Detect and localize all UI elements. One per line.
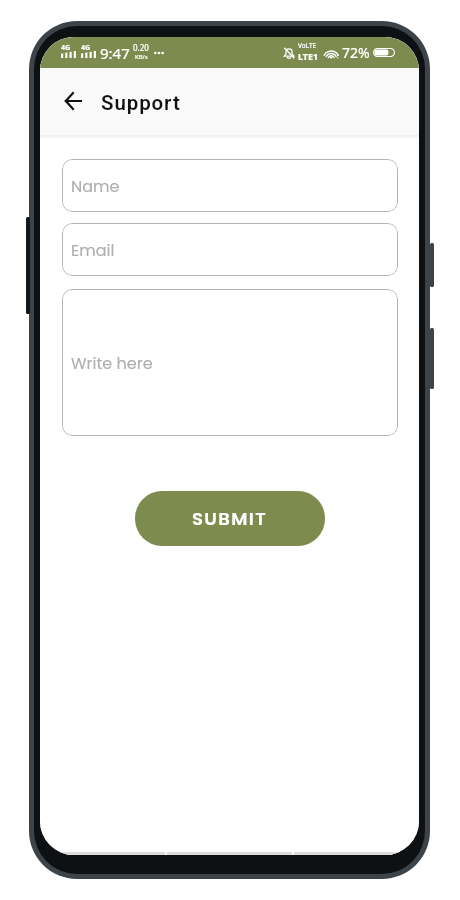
staticText: 0.20 [133, 42, 149, 53]
button[interactable]: Back [51, 79, 95, 123]
staticText: 72% [342, 43, 370, 62]
button[interactable]: SUBMIT [135, 491, 325, 546]
staticText: Name [71, 175, 120, 197]
button[interactable]: Name [62, 159, 398, 212]
staticText: VoLTE [298, 41, 317, 50]
staticText: 4G [81, 43, 91, 53]
staticText: 4G [61, 43, 71, 53]
staticText: KB/s [135, 53, 148, 61]
button[interactable]: Email [62, 223, 398, 276]
staticText: LTE1 [298, 50, 319, 62]
staticText: 9:47 [100, 43, 130, 63]
staticText: SUBMIT [192, 506, 268, 531]
staticText: Support [101, 91, 181, 115]
staticText: Write here [71, 352, 153, 374]
staticText: Email [71, 239, 115, 261]
button[interactable]: Write here [62, 289, 398, 436]
